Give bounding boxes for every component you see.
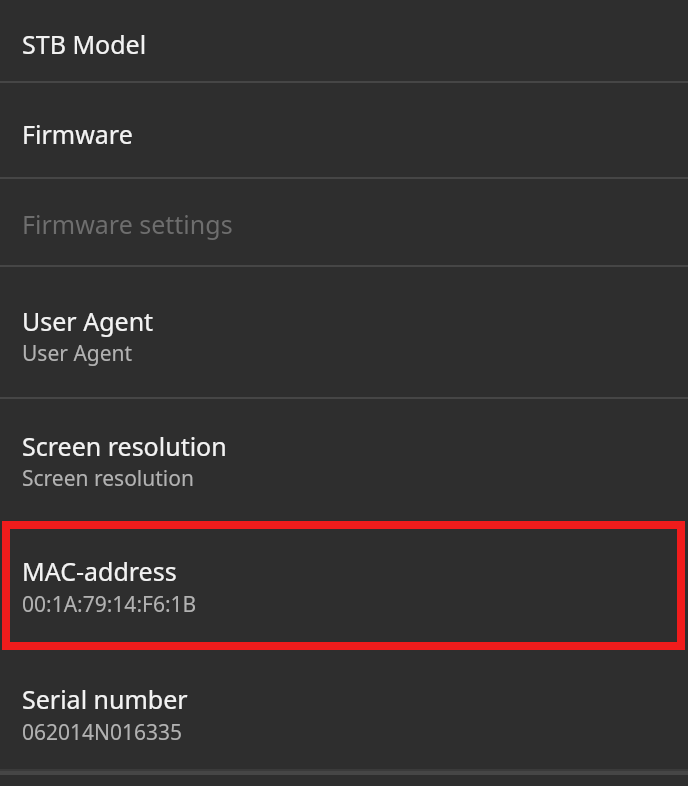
staticText: Screen resolution <box>22 429 227 463</box>
staticText: 062014N016335 <box>22 718 183 747</box>
staticText: Firmware <box>22 117 133 151</box>
staticText: Firmware settings <box>22 207 233 241</box>
button[interactable]: Screen resolution <box>0 399 688 518</box>
staticText: 00:1A:79:14:F6:1B <box>22 590 197 619</box>
staticText: MAC-address <box>22 554 177 588</box>
button[interactable]: Firmware <box>0 83 688 177</box>
staticText: User Agent <box>22 339 133 368</box>
button[interactable]: Firmware settings <box>0 179 688 265</box>
button[interactable]: User Agent <box>0 267 688 397</box>
button[interactable]: MAC-address <box>0 518 688 649</box>
button[interactable]: STB Model <box>0 0 688 81</box>
staticText: Serial number <box>22 682 188 716</box>
staticText: STB Model <box>22 27 147 61</box>
staticText: Screen resolution <box>22 464 194 493</box>
button[interactable]: Serial number <box>0 649 688 769</box>
staticText: User Agent <box>22 304 154 338</box>
